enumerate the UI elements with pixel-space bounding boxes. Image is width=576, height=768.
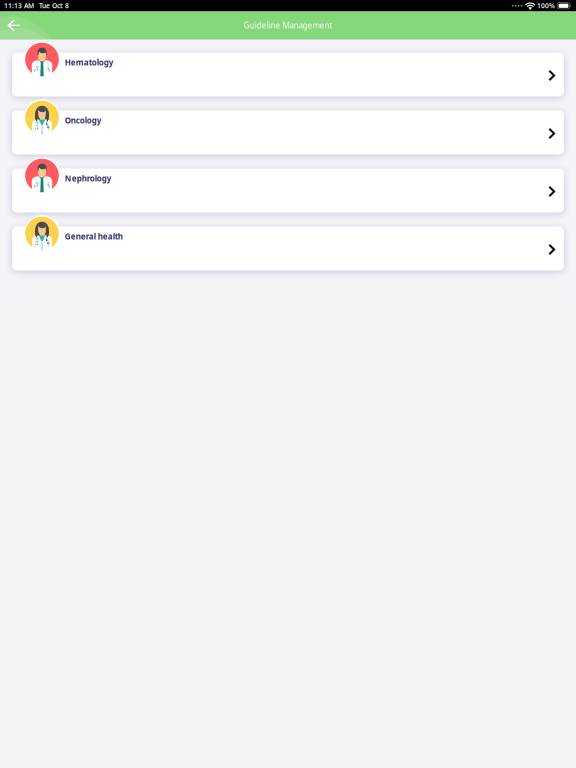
staticText: Guideline Management [243,20,332,31]
staticText: Hematology [65,57,114,68]
staticText: Tue Oct 8 [39,1,69,10]
staticText: Oncology [65,115,102,126]
staticText: 100% [537,1,555,10]
button[interactable]: Back [0,11,28,39]
staticText: General health [65,231,123,242]
staticText: Nephrology [65,173,112,184]
button[interactable]: Hematology [12,52,564,96]
button[interactable]: General health [12,226,564,270]
staticText: 11:13 AM [4,1,34,10]
button[interactable]: Oncology [12,110,564,154]
button[interactable]: Nephrology [12,168,564,212]
